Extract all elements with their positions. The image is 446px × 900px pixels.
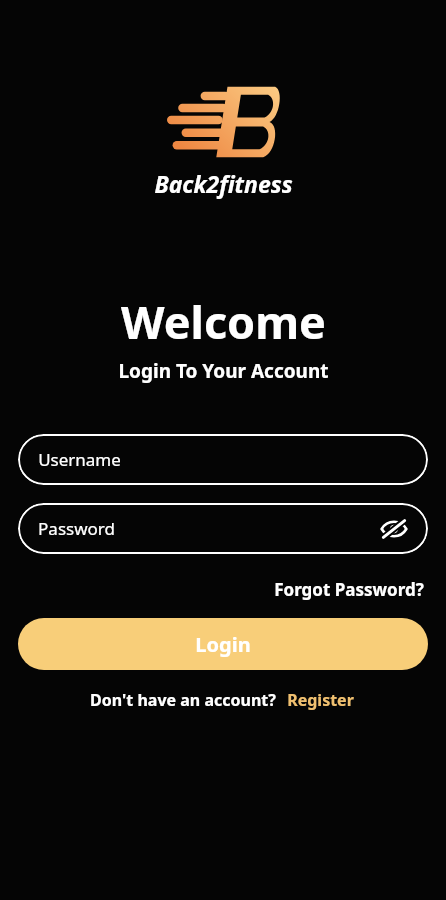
staticText: Password — [38, 517, 115, 540]
staticText: Username — [38, 448, 121, 471]
staticText: Login To Your Account — [118, 358, 329, 384]
button[interactable]: Register — [285, 687, 356, 713]
button[interactable]: Forgot Password? — [270, 576, 428, 603]
staticText: Register — [287, 689, 354, 711]
staticText: Back2fitness — [154, 168, 293, 199]
button[interactable]: Login — [18, 618, 428, 670]
staticText: Forgot Password? — [274, 578, 424, 601]
button[interactable]: Show password — [378, 513, 410, 545]
staticText: Welcome — [121, 291, 326, 352]
staticText: Don't have an account? — [90, 689, 276, 711]
staticText: Login — [195, 631, 251, 658]
button[interactable]: Password — [18, 503, 428, 554]
button[interactable]: Username — [18, 434, 428, 485]
